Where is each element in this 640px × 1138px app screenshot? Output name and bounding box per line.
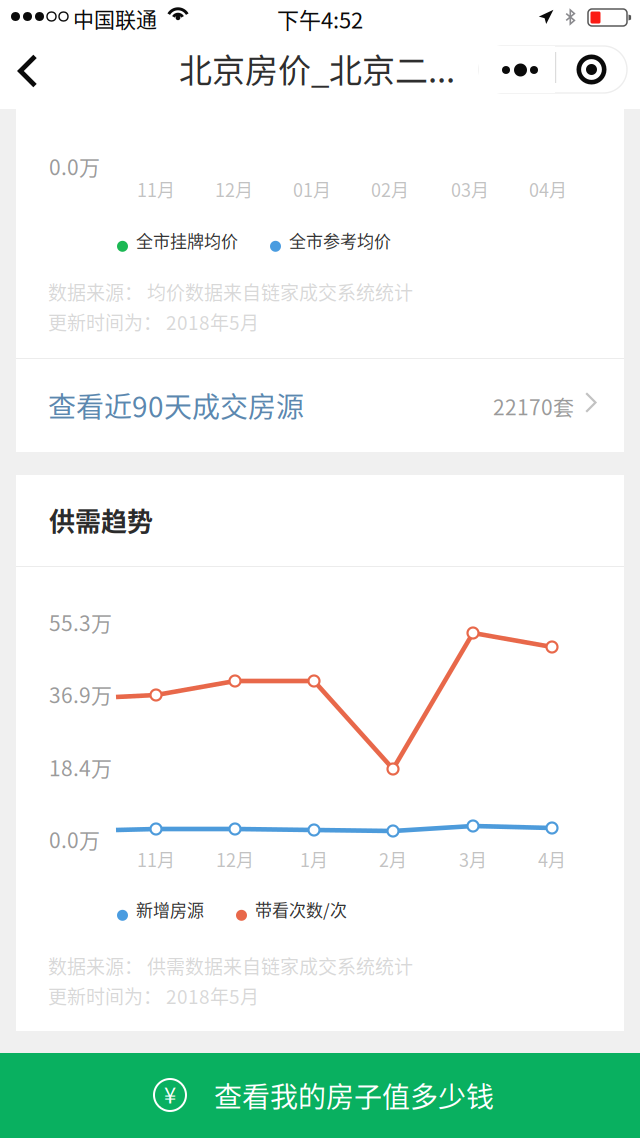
staticText: 1月: [300, 846, 328, 872]
staticText: 18.4万: [49, 752, 112, 782]
staticText: 供需趋势: [49, 501, 153, 539]
staticText: 01月: [293, 176, 331, 202]
staticText: 北京房价_北京二...: [179, 44, 455, 92]
staticText: 0.0万: [49, 824, 100, 854]
staticText: 更新时间为： 2018年5月: [48, 308, 259, 335]
staticText: 更新时间为： 2018年5月: [48, 982, 259, 1009]
staticText: 下午4:52: [277, 3, 363, 35]
button[interactable]: More: [479, 46, 555, 93]
staticText: 数据来源： 供需数据来自链家成交系统统计: [48, 952, 413, 979]
staticText: 查看我的房子值多少钱: [214, 1075, 494, 1115]
staticText: 带看次数/次: [255, 897, 347, 922]
button[interactable]: ¥: [0, 1053, 640, 1138]
staticText: 3月: [459, 846, 487, 872]
staticText: 全市参考均价: [289, 228, 391, 253]
staticText: 全市挂牌均价: [136, 228, 238, 253]
staticText: 0.0万: [49, 151, 100, 181]
button[interactable]: Close: [556, 46, 627, 93]
staticText: 4月: [538, 846, 566, 872]
staticText: 55.3万: [49, 607, 112, 637]
staticText: 36.9万: [49, 679, 112, 709]
staticText: 03月: [451, 176, 489, 202]
staticText: 2月: [379, 846, 407, 872]
staticText: ¥: [164, 1078, 176, 1110]
staticText: 11月: [137, 846, 175, 872]
staticText: 查看近90天成交房源: [48, 385, 304, 425]
staticText: 12月: [215, 176, 253, 202]
staticText: 22170套: [493, 391, 574, 421]
staticText: 04月: [529, 176, 567, 202]
staticText: 新增房源: [136, 897, 204, 922]
staticText: 12月: [216, 846, 254, 872]
button[interactable]: 查看近90天成交房源: [16, 359, 624, 452]
staticText: 中国联通: [73, 3, 157, 33]
staticText: 11月: [137, 176, 175, 202]
staticText: 02月: [371, 176, 409, 202]
button[interactable]: Back: [0, 40, 56, 109]
staticText: 数据来源： 均价数据来自链家成交系统统计: [48, 278, 413, 305]
